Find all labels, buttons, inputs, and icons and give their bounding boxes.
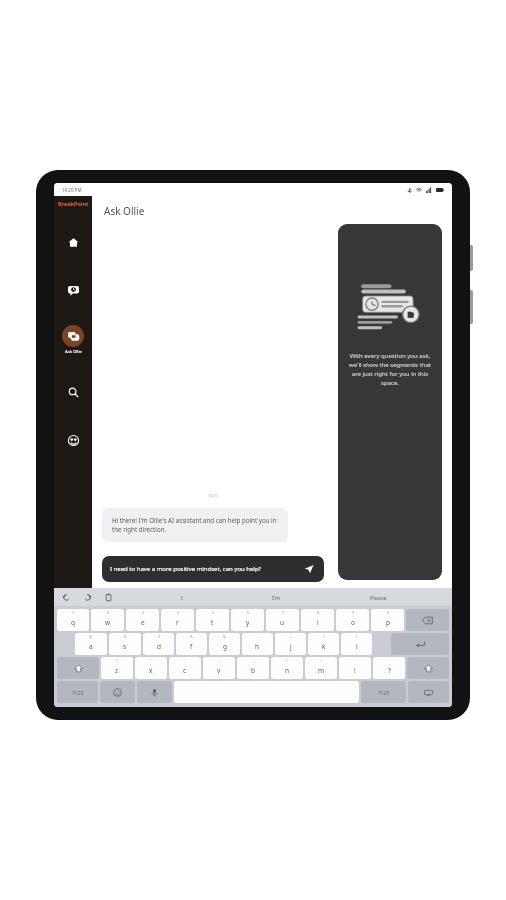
button[interactable]: 9: [336, 609, 369, 631]
button[interactable]: @: [75, 633, 107, 655]
staticText: x: [149, 666, 153, 675]
staticText: k: [322, 642, 326, 651]
button[interactable]: Please: [364, 592, 393, 603]
button[interactable]: 0: [371, 609, 404, 631]
button[interactable]: ?: [373, 657, 405, 679]
staticText: n: [285, 666, 290, 675]
button[interactable]: With every question you ask, we'll show …: [338, 224, 442, 580]
button[interactable]: ?123: [57, 681, 98, 703]
button[interactable]: I: [175, 592, 189, 603]
staticText: h: [255, 642, 260, 651]
button[interactable]: Home: [62, 231, 84, 253]
staticText: 19:20 PM: [62, 187, 82, 193]
staticText: e: [141, 618, 145, 627]
staticText: 5: [212, 610, 214, 615]
button[interactable]: 4: [161, 609, 194, 631]
staticText: ;: [253, 658, 254, 663]
staticText: z: [115, 666, 119, 675]
staticText: l: [356, 642, 358, 651]
button[interactable]: (: [308, 633, 339, 655]
button[interactable]: ;: [237, 657, 269, 679]
staticText: $: [158, 634, 160, 639]
button[interactable]: Clipboard: [102, 591, 115, 604]
button[interactable]: #: [109, 633, 141, 655]
button[interactable]: Search: [62, 381, 84, 403]
button[interactable]: Send: [302, 562, 316, 576]
staticText: q: [71, 618, 75, 627]
staticText: I: [181, 594, 183, 601]
button[interactable]: Ask Ollie: [60, 323, 86, 357]
staticText: t: [211, 618, 214, 627]
button[interactable]: !: [339, 657, 371, 679]
button[interactable]: Undo: [60, 591, 73, 604]
staticText: (: [323, 634, 325, 639]
button[interactable]: Backspace: [406, 609, 449, 631]
button[interactable]: Hi there! I'm Ollie's AI assistant and c…: [102, 508, 288, 542]
staticText: ~: [320, 658, 322, 663]
staticText: /: [286, 658, 288, 663]
button[interactable]: Hide keyboard: [408, 681, 449, 703]
staticText: ?: [388, 666, 391, 675]
button[interactable]: ~: [305, 657, 337, 679]
button[interactable]: Redo: [81, 591, 94, 604]
staticText: u: [280, 618, 285, 627]
button[interactable]: ): [341, 633, 372, 655]
staticText: Ask Ollie: [104, 204, 145, 218]
staticText: @: [89, 634, 93, 639]
button[interactable]: &: [209, 633, 240, 655]
staticText: With every question you ask, we'll show …: [348, 352, 432, 387]
staticText: g: [223, 642, 227, 651]
staticText: ): [356, 634, 358, 639]
staticText: &: [223, 634, 226, 639]
button[interactable]: Enter: [391, 633, 449, 655]
button[interactable]: 6: [231, 609, 264, 631]
staticText: Please: [370, 594, 387, 601]
staticText: j: [290, 642, 292, 651]
button[interactable]: I need to have a more positive mindset, …: [102, 556, 324, 582]
staticText: Hi there! I'm Ollie's AI assistant and c…: [112, 516, 278, 534]
staticText: ": [150, 658, 152, 663]
button[interactable]: 7: [266, 609, 299, 631]
button[interactable]: 5: [196, 609, 229, 631]
button[interactable]: :: [203, 657, 235, 679]
button[interactable]: Emoji: [100, 681, 135, 703]
button[interactable]: Shift: [57, 657, 99, 679]
button[interactable]: ?123: [361, 681, 406, 703]
button[interactable]: I'm: [266, 592, 287, 603]
staticText: -: [257, 634, 259, 639]
staticText: s: [123, 642, 127, 651]
button[interactable]: ': [169, 657, 201, 679]
button[interactable]: ": [135, 657, 167, 679]
staticText: m: [318, 666, 325, 675]
button[interactable]: History: [62, 279, 84, 301]
staticText: b: [251, 666, 255, 675]
staticText: a: [89, 642, 93, 651]
button[interactable]: Profile: [62, 429, 84, 451]
staticText: c: [183, 666, 187, 675]
staticText: v: [217, 666, 221, 675]
staticText: %: [190, 634, 193, 639]
staticText: ?123: [378, 689, 390, 696]
button[interactable]: Shift: [407, 657, 449, 679]
staticText: r: [176, 618, 179, 627]
button[interactable]: 1: [57, 609, 89, 631]
staticText: 1: [72, 610, 74, 615]
staticText: y: [246, 618, 250, 627]
staticText: 2: [107, 610, 109, 615]
button[interactable]: $: [143, 633, 174, 655]
button[interactable]: -: [242, 633, 273, 655]
button[interactable]: Voice input: [137, 681, 172, 703]
staticText: *: [116, 658, 118, 663]
button[interactable]: 8: [301, 609, 334, 631]
staticText: f: [190, 642, 193, 651]
button[interactable]: 2: [91, 609, 124, 631]
staticText: #: [124, 634, 127, 639]
button[interactable]: /: [271, 657, 303, 679]
button[interactable]: %: [176, 633, 207, 655]
staticText: 19:10: [208, 493, 218, 498]
staticText: p: [386, 618, 390, 627]
button[interactable]: *: [101, 657, 133, 679]
button[interactable]: 3: [126, 609, 159, 631]
button[interactable]: +: [275, 633, 306, 655]
